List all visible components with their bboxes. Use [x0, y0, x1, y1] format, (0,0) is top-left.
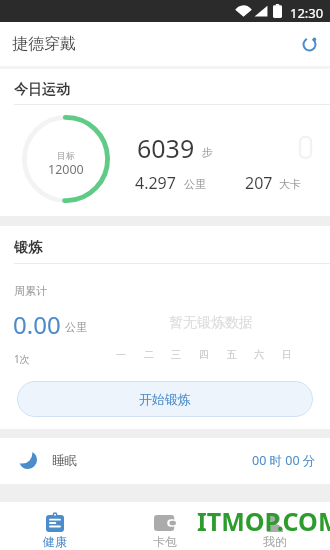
staticText: 00 时 00 分: [252, 452, 316, 469]
staticText: 二: [144, 348, 154, 361]
staticText: 日: [282, 348, 292, 361]
staticText: 四: [199, 348, 209, 361]
staticText: 六: [254, 348, 264, 361]
staticText: 开始锻炼: [139, 391, 191, 407]
staticText: 12000: [48, 161, 84, 178]
button[interactable]: 健康: [0, 502, 110, 550]
staticText: 4.297: [135, 172, 176, 194]
staticText: 捷德穿戴: [12, 34, 76, 54]
staticText: 1次: [14, 352, 30, 366]
staticText: 一: [116, 348, 126, 361]
staticText: 三: [171, 348, 181, 361]
staticText: 207: [245, 172, 273, 194]
staticText: 公里: [65, 320, 87, 334]
staticText: 五: [227, 348, 237, 361]
button[interactable]: Refresh: [296, 31, 322, 57]
staticText: 暂无锻炼数据: [169, 314, 253, 332]
staticText: ITMOP.COM: [197, 504, 330, 538]
staticText: 6039: [137, 131, 195, 165]
staticText: 睡眠: [52, 453, 77, 469]
staticText: 今日运动: [14, 81, 70, 99]
button[interactable]: 卡包: [110, 502, 220, 550]
button[interactable]: 我的: [220, 502, 330, 550]
staticText: 卡包: [153, 534, 177, 549]
staticText: 0.00: [13, 308, 61, 341]
staticText: 锻炼: [14, 239, 42, 257]
staticText: 大卡: [279, 177, 301, 191]
staticText: 步: [202, 145, 213, 159]
staticText: 我的: [263, 534, 287, 549]
button[interactable]: 开始锻炼: [17, 381, 313, 417]
staticText: 目标: [57, 150, 75, 161]
button[interactable]: 睡眠: [0, 438, 330, 484]
staticText: 周累计: [14, 284, 47, 298]
staticText: 公里: [184, 177, 206, 191]
staticText: 12:30: [290, 4, 324, 22]
staticText: 健康: [43, 534, 67, 549]
